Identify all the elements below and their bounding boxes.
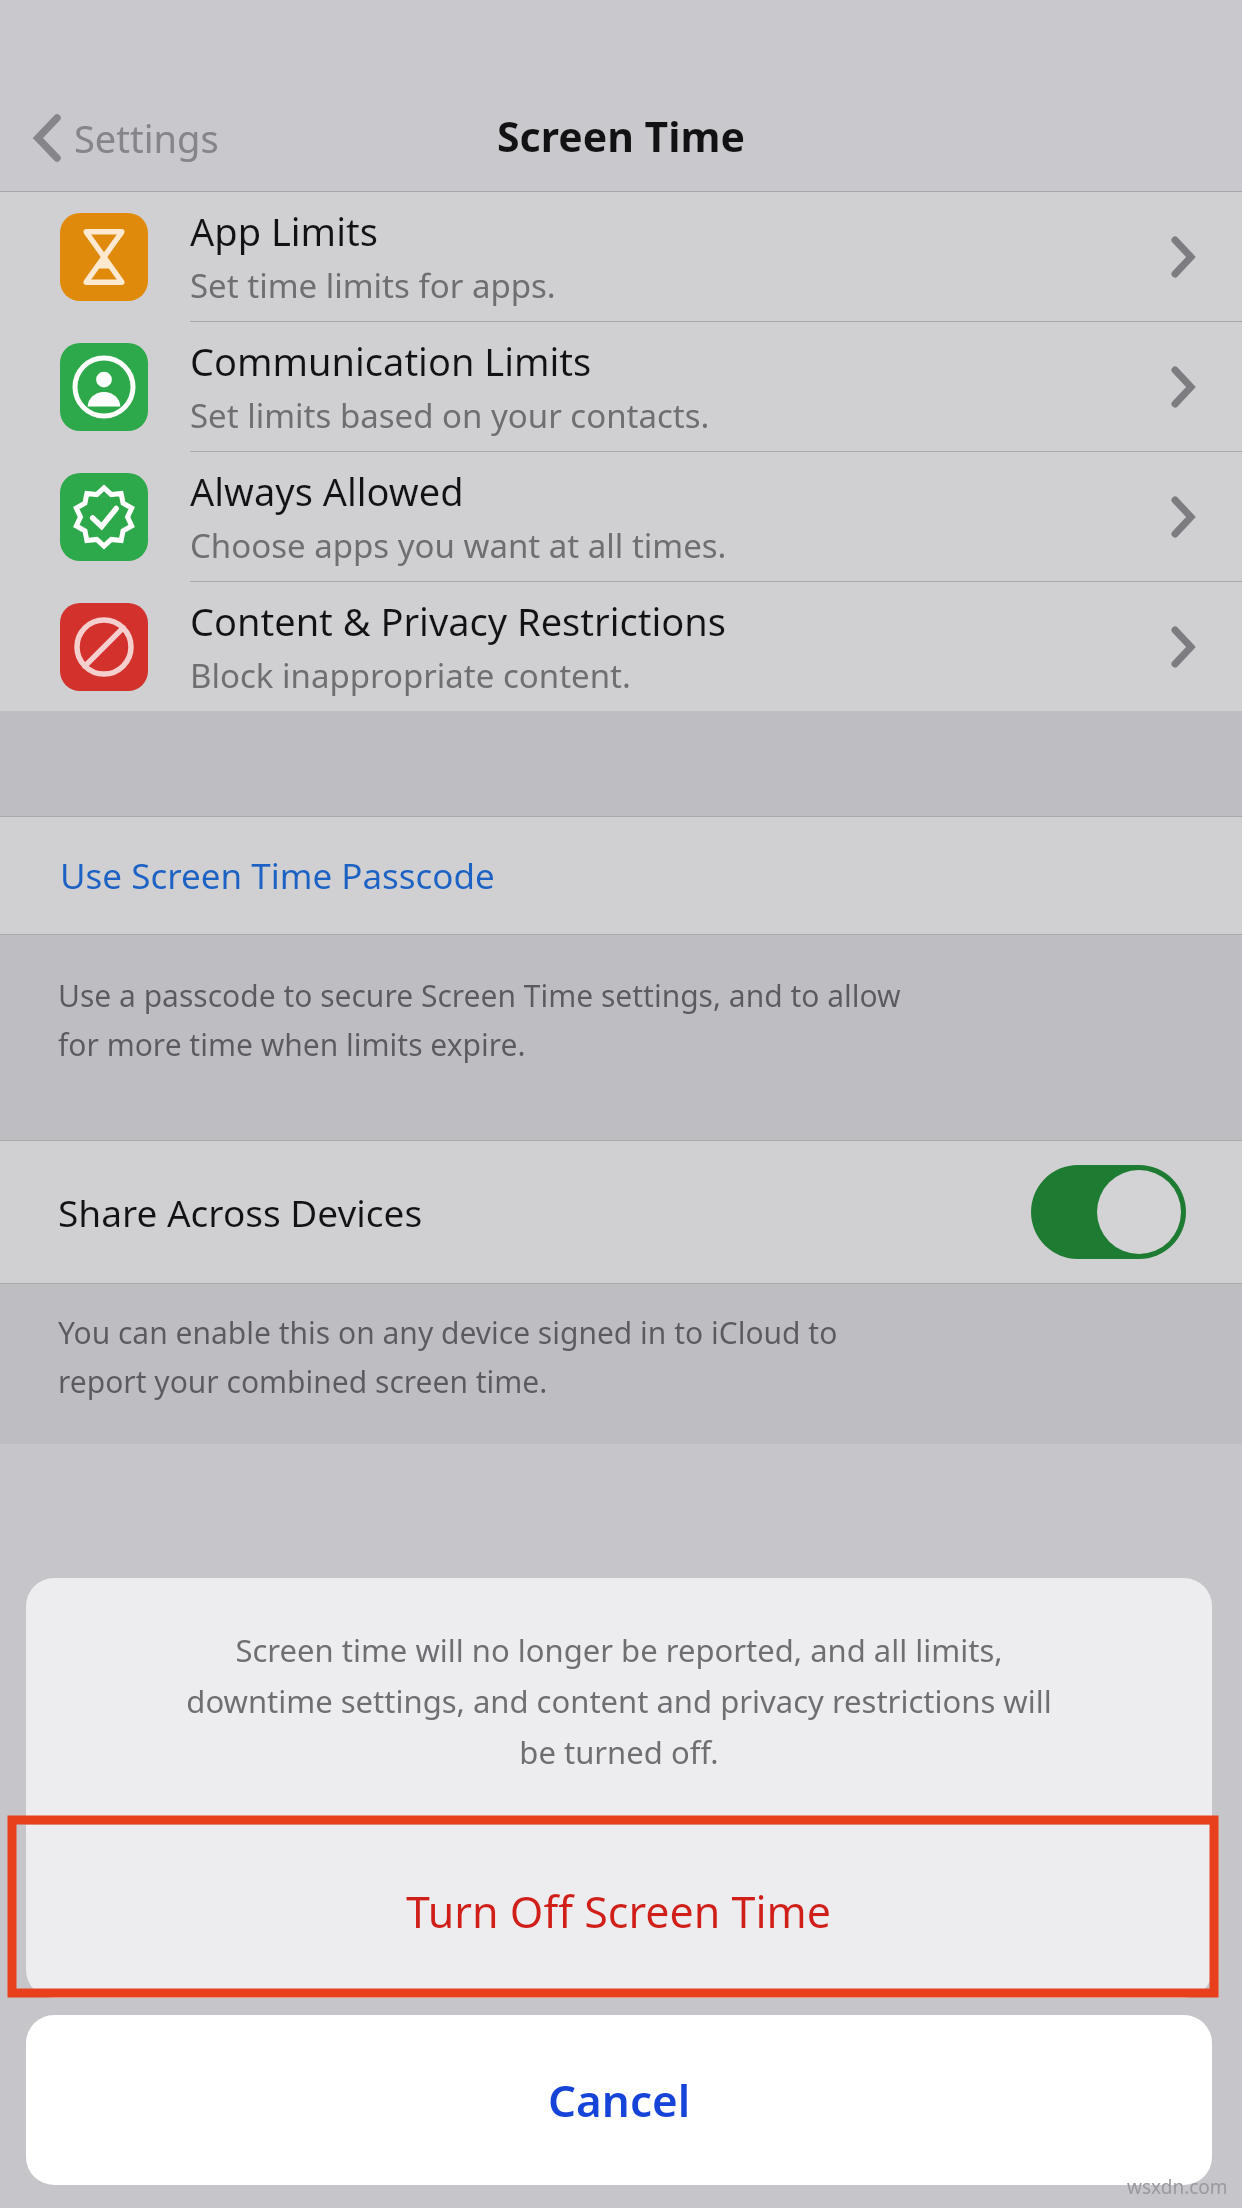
staticText: for more time when limits expire. — [58, 1024, 526, 1065]
staticText: Communication Limits — [190, 335, 592, 387]
staticText: Block inappropriate content. — [190, 653, 631, 698]
staticText: You can enable this on any device signed… — [58, 1312, 838, 1353]
staticText: Content & Privacy Restrictions — [190, 595, 726, 647]
staticText: Cancel — [548, 2070, 691, 2130]
button[interactable]: App Limits — [0, 192, 1242, 321]
staticText: Choose apps you want at all times. — [190, 523, 727, 568]
staticText: Set time limits for apps. — [190, 263, 556, 308]
staticText: App Limits — [190, 205, 378, 257]
button[interactable]: Cancel — [26, 2015, 1212, 2185]
staticText: downtime settings, and content and priva… — [186, 1680, 1052, 1722]
staticText: Settings — [74, 112, 219, 164]
staticText: wsxdn.com — [1127, 2174, 1228, 2200]
staticText: Use a passcode to secure Screen Time set… — [58, 975, 901, 1016]
staticText: Turn Off Screen Time — [406, 1882, 832, 1941]
staticText: Screen time will no longer be reported, … — [235, 1629, 1003, 1671]
staticText: Use Screen Time Passcode — [60, 852, 495, 900]
staticText: Screen Time — [497, 108, 745, 164]
button[interactable]: Content & Privacy Restrictions — [0, 582, 1242, 711]
button[interactable]: Use Screen Time Passcode — [0, 817, 1242, 934]
button[interactable]: Turn Off Screen Time — [26, 1825, 1212, 1998]
staticText: Always Allowed — [190, 465, 464, 517]
button[interactable]: Share Across Devices — [0, 1141, 1242, 1283]
staticText: be turned off. — [519, 1731, 719, 1773]
staticText: Share Across Devices — [58, 1187, 423, 1237]
staticText: report your combined screen time. — [58, 1361, 548, 1402]
button[interactable]: Share Across Devices toggle — [1031, 1165, 1186, 1259]
staticText: Set limits based on your contacts. — [190, 393, 710, 438]
button[interactable]: Settings — [28, 106, 225, 170]
button[interactable]: Communication Limits — [0, 322, 1242, 451]
button[interactable]: Always Allowed — [0, 452, 1242, 581]
